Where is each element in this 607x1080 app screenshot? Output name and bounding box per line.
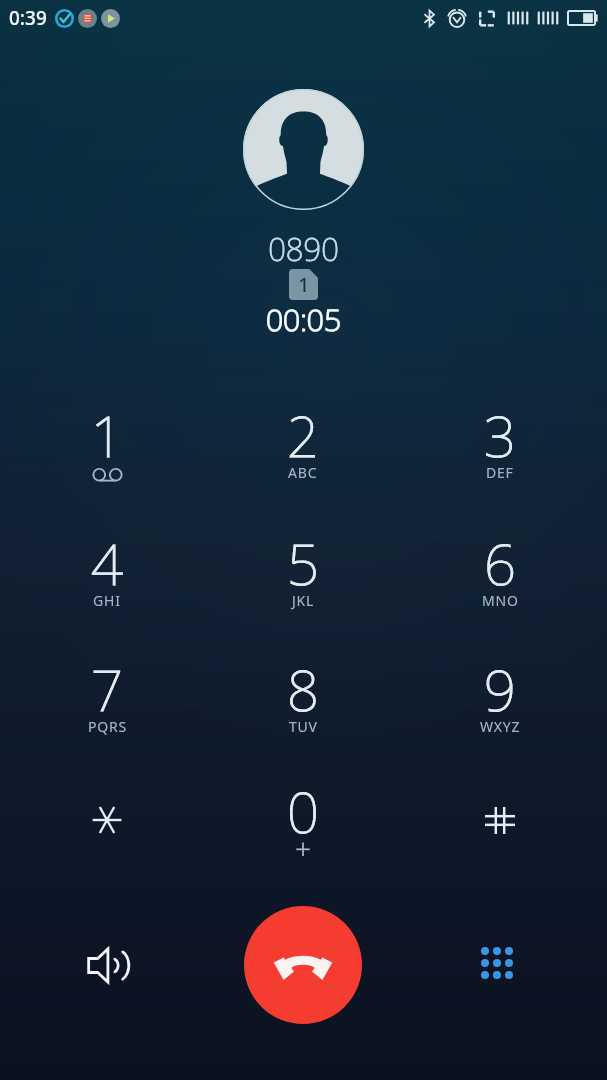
- button[interactable]: [438, 394, 562, 498]
- staticText: TUV: [289, 717, 318, 736]
- staticText: ABC: [288, 463, 318, 482]
- staticText: 0: [287, 773, 319, 849]
- staticText: 0890: [268, 228, 339, 270]
- staticText: 9: [484, 651, 516, 727]
- button[interactable]: [241, 522, 365, 626]
- button[interactable]: [241, 648, 365, 752]
- staticText: PQRS: [88, 717, 127, 736]
- staticText: DEF: [486, 463, 514, 482]
- staticText: 9: [484, 651, 516, 727]
- staticText: 00:05: [266, 299, 341, 340]
- button[interactable]: End call: [244, 906, 362, 1024]
- staticText: 3: [484, 397, 516, 473]
- button[interactable]: Dialpad: [462, 928, 532, 998]
- staticText: 5: [287, 525, 319, 601]
- staticText: 1: [298, 271, 310, 298]
- staticText: 2: [287, 397, 319, 473]
- button[interactable]: [241, 770, 365, 874]
- button[interactable]: [45, 522, 169, 626]
- staticText: 8: [287, 651, 319, 727]
- staticText: 5: [287, 525, 319, 601]
- button[interactable]: Speaker: [72, 930, 142, 1000]
- button[interactable]: [438, 648, 562, 752]
- staticText: 4: [91, 525, 123, 601]
- staticText: 6: [484, 525, 516, 601]
- staticText: 6: [484, 525, 516, 601]
- staticText: 0: [287, 773, 319, 849]
- staticText: GHI: [93, 591, 121, 610]
- button[interactable]: [45, 394, 169, 498]
- button[interactable]: [45, 648, 169, 752]
- staticText: 8: [287, 651, 319, 727]
- staticText: 2: [287, 397, 319, 473]
- staticText: 1: [91, 397, 123, 473]
- staticText: 3: [484, 397, 516, 473]
- button[interactable]: [438, 770, 562, 874]
- button[interactable]: [241, 394, 365, 498]
- staticText: 0890: [268, 228, 339, 270]
- button[interactable]: [438, 522, 562, 626]
- staticText: 00:05: [266, 299, 341, 340]
- staticText: WXYZ: [480, 717, 521, 736]
- staticText: 0:39: [9, 5, 47, 31]
- staticText: 4: [91, 525, 123, 601]
- button[interactable]: [45, 770, 169, 874]
- staticText: MNO: [482, 591, 519, 610]
- staticText: JKL: [292, 591, 315, 610]
- staticText: 1: [91, 397, 123, 473]
- staticText: 7: [91, 651, 123, 727]
- staticText: 7: [91, 651, 123, 727]
